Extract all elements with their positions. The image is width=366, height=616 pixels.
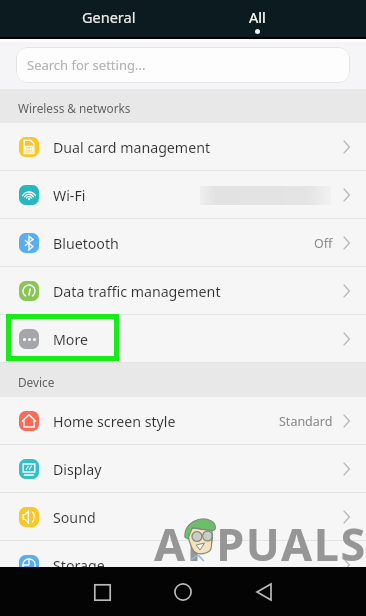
staticText: Data traffic management: [53, 282, 221, 301]
button[interactable]: Wi-Fi: [0, 171, 366, 219]
staticText: Search for setting...: [27, 56, 146, 74]
staticText: Bluetooth: [53, 234, 119, 253]
staticText: Sound: [53, 508, 96, 527]
staticText: Home screen style: [53, 412, 176, 431]
button[interactable]: Back: [240, 568, 288, 616]
button[interactable]: Data traffic management: [0, 267, 366, 315]
staticText: Display: [53, 460, 102, 479]
staticText: Standard: [279, 413, 333, 430]
button[interactable]: General: [56, 0, 162, 37]
staticText: Dual card management: [53, 138, 211, 157]
button[interactable]: Search for setting...: [16, 47, 350, 83]
staticText: Wireless & networks: [18, 100, 131, 116]
button[interactable]: All: [204, 0, 310, 37]
button[interactable]: Bluetooth: [0, 219, 366, 267]
button[interactable]: Recents: [78, 568, 126, 616]
button[interactable]: More: [0, 315, 366, 363]
button[interactable]: Home screen style: [0, 397, 366, 445]
button[interactable]: Home: [159, 568, 207, 616]
staticText: APPUALS: [154, 513, 366, 573]
staticText: Storage: [53, 556, 105, 575]
staticText: Wi-Fi: [53, 186, 86, 205]
staticText: All: [249, 7, 266, 27]
staticText: General: [82, 7, 136, 27]
button[interactable]: Display: [0, 445, 366, 493]
staticText: Off: [314, 235, 333, 252]
staticText: More: [53, 330, 89, 349]
button[interactable]: Sound: [0, 493, 366, 541]
button[interactable]: Storage: [0, 541, 366, 589]
staticText: Device: [18, 374, 55, 390]
button[interactable]: Dual card management: [0, 123, 366, 171]
